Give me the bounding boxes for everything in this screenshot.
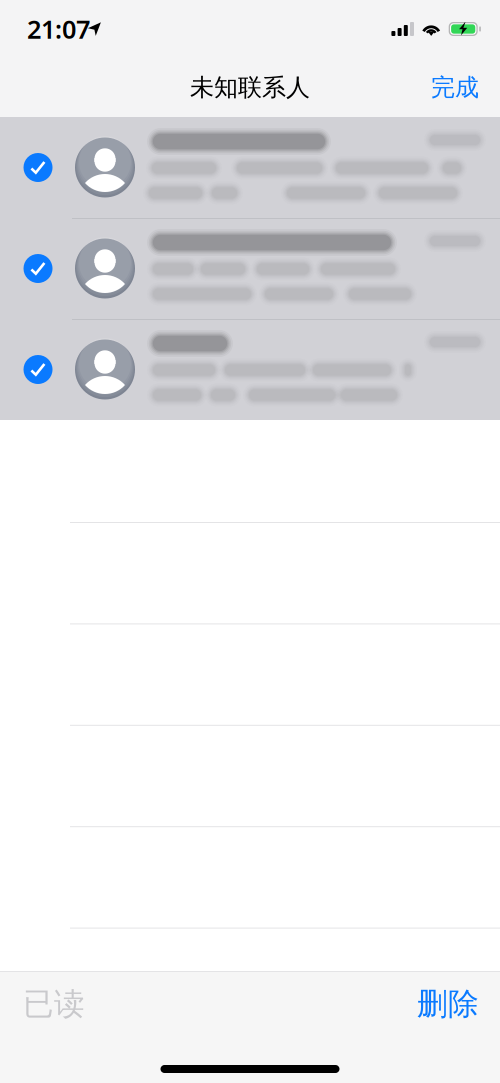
staticText: 删除 — [417, 985, 479, 1023]
staticText: 已读 — [23, 985, 85, 1023]
button[interactable] — [0, 218, 500, 319]
staticText: 未知联系人 — [190, 72, 310, 103]
staticText: 完成 — [431, 72, 479, 103]
staticText: 21:07 — [27, 12, 90, 46]
button[interactable]: 删除 — [401, 974, 500, 1034]
button[interactable] — [0, 319, 500, 420]
button[interactable] — [0, 117, 500, 218]
button[interactable]: 已读 — [0, 974, 101, 1034]
button[interactable]: 完成 — [415, 62, 500, 112]
